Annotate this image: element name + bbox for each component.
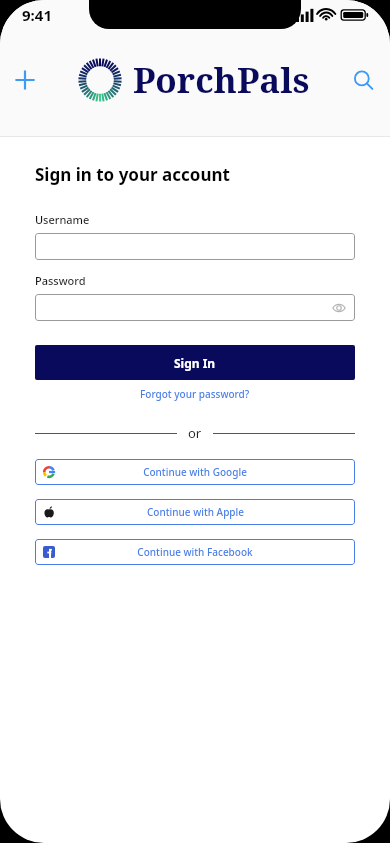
staticText: Forgot your password?: [140, 387, 250, 401]
button[interactable]: Continue with Facebook: [35, 539, 355, 565]
staticText: Continue with Google: [143, 465, 247, 479]
button[interactable]: Add: [8, 63, 42, 97]
button[interactable]: Show password: [35, 294, 355, 321]
staticText: Continue with Apple: [147, 505, 244, 519]
button[interactable]: Continue with Apple: [35, 499, 355, 525]
staticText: or: [188, 424, 202, 442]
staticText: 9:41: [22, 5, 52, 25]
button[interactable]: Sign In: [35, 345, 355, 380]
button[interactable]: [35, 233, 355, 260]
staticText: Username: [35, 212, 90, 227]
button[interactable]: Search: [346, 63, 380, 97]
staticText: Continue with Facebook: [137, 545, 253, 559]
staticText: PorchPals: [133, 56, 310, 104]
staticText: Sign In: [174, 355, 216, 371]
button[interactable]: Continue with Google: [35, 459, 355, 485]
button[interactable]: Forgot your password?: [134, 385, 256, 403]
button[interactable]: Show password: [331, 300, 347, 316]
staticText: Sign in to your account: [35, 163, 230, 186]
staticText: Password: [35, 273, 86, 288]
